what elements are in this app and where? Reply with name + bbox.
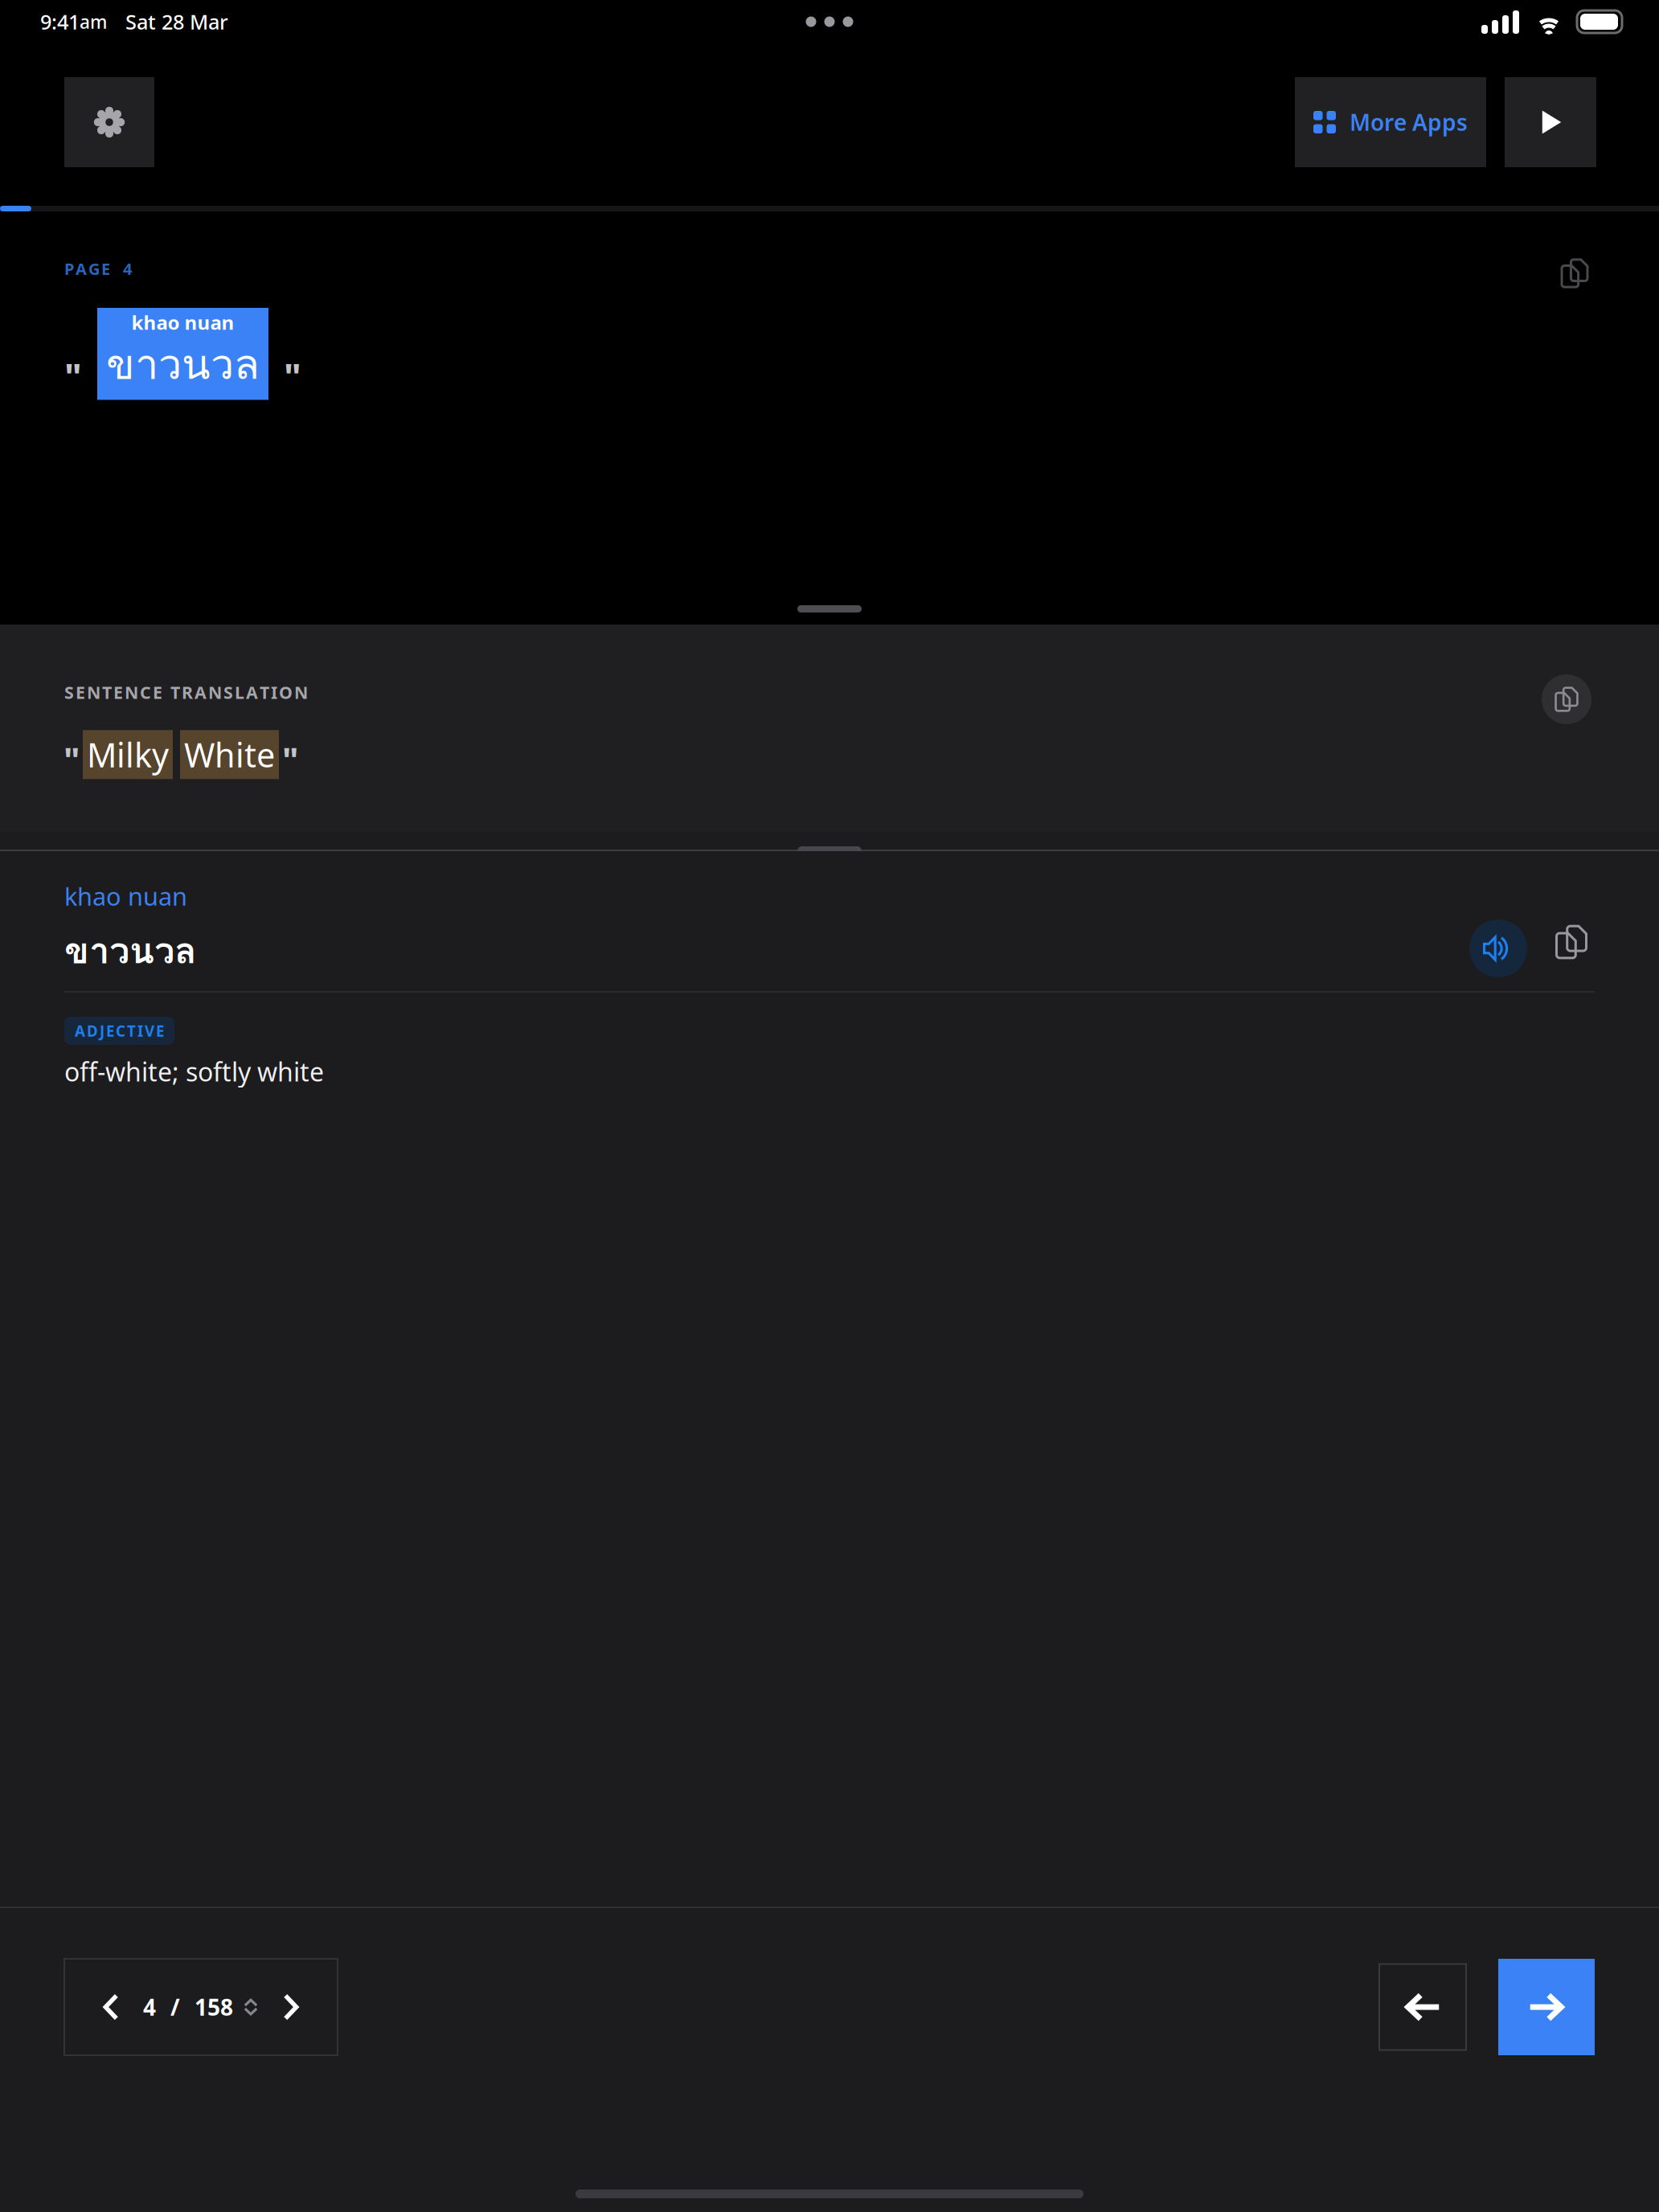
- staticText: Sat 28 Mar: [125, 8, 228, 35]
- staticText: /: [170, 1992, 180, 2022]
- staticText: White: [184, 732, 275, 777]
- staticText: 9:41: [40, 8, 80, 35]
- button[interactable]: Previous: [1379, 1964, 1466, 2050]
- button[interactable]: Copy translation: [1538, 671, 1595, 727]
- staticText: khao nuan: [64, 880, 187, 912]
- button[interactable]: Play: [1505, 77, 1596, 167]
- button[interactable]: Copy word: [1548, 919, 1595, 965]
- staticText: P A G E 4: [64, 258, 132, 279]
- button[interactable]: Next: [1498, 1959, 1595, 2055]
- staticText: 158: [195, 1992, 233, 2022]
- staticText: 4: [143, 1992, 156, 2022]
- button[interactable]: Previous page: [80, 1960, 143, 2054]
- staticText: More Apps: [1350, 107, 1468, 137]
- button[interactable]: More Apps: [1295, 77, 1486, 167]
- staticText: ขาวนวล: [106, 332, 260, 397]
- button[interactable]: Play pronunciation: [1466, 916, 1530, 981]
- staticText: ": [63, 737, 80, 782]
- staticText: ": [64, 351, 82, 400]
- staticText: ": [282, 737, 298, 782]
- staticText: ขาวนวล: [64, 922, 197, 979]
- staticText: S E N T E N C E T R A N S L A T I O N: [64, 681, 308, 704]
- button[interactable]: Settings: [64, 77, 154, 167]
- staticText: khao nuan: [131, 309, 234, 335]
- staticText: ": [284, 351, 301, 400]
- staticText: off-white; softly white: [64, 1054, 324, 1089]
- staticText: Milky: [87, 732, 169, 777]
- staticText: am: [80, 10, 107, 34]
- button[interactable]: Copy sentence: [1555, 253, 1595, 293]
- staticText: A D J E C T I V E: [75, 1021, 164, 1041]
- button[interactable]: Next page: [259, 1960, 322, 2054]
